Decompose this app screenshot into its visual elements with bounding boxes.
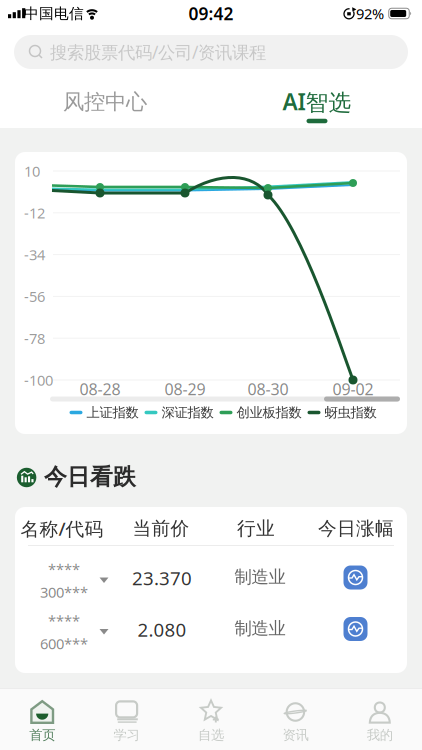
staticText: 制造业 bbox=[234, 618, 285, 639]
staticText: 09-02 bbox=[332, 378, 373, 400]
button[interactable]: 展开 300*** bbox=[15, 552, 119, 604]
button[interactable]: 首页 bbox=[0, 688, 84, 750]
button[interactable]: 风控中心 bbox=[30, 85, 180, 119]
staticText: -56 bbox=[24, 287, 45, 306]
staticText: 23.370 bbox=[132, 566, 192, 590]
staticText: 我的 bbox=[367, 727, 393, 743]
staticText: 今日看跌 bbox=[44, 463, 136, 491]
staticText: 09:42 bbox=[188, 2, 233, 25]
button[interactable]: 查看走势 bbox=[343, 565, 367, 589]
button[interactable]: 查看走势 bbox=[343, 617, 367, 641]
staticText: 92% bbox=[356, 4, 384, 23]
staticText: AI智选 bbox=[282, 86, 351, 117]
staticText: 自选 bbox=[198, 727, 224, 743]
staticText: 今日涨幅 bbox=[318, 517, 394, 540]
staticText: 资讯 bbox=[282, 727, 308, 743]
staticText: 制造业 bbox=[234, 566, 285, 588]
staticText: 名称/代码 bbox=[20, 516, 103, 541]
staticText: 上证指数 bbox=[86, 404, 138, 421]
staticText: -12 bbox=[24, 203, 45, 223]
button[interactable]: 搜索股票代码/公司/资讯课程 bbox=[14, 35, 408, 69]
staticText: 10 bbox=[24, 161, 40, 181]
staticText: **** bbox=[48, 611, 80, 630]
staticText: 学习 bbox=[114, 727, 140, 743]
staticText: 蚜虫指数 bbox=[324, 404, 376, 421]
button[interactable]: 资讯 bbox=[253, 688, 338, 750]
staticText: 当前价 bbox=[132, 517, 189, 540]
staticText: -100 bbox=[24, 370, 53, 390]
staticText: 搜索股票代码/公司/资讯课程 bbox=[50, 40, 266, 63]
staticText: 2.080 bbox=[137, 617, 186, 642]
staticText: 08-28 bbox=[79, 378, 120, 400]
staticText: 600*** bbox=[40, 634, 88, 653]
staticText: 08-29 bbox=[164, 378, 205, 400]
staticText: 深证指数 bbox=[161, 404, 213, 421]
staticText: 300*** bbox=[40, 582, 88, 602]
staticText: 风控中心 bbox=[63, 89, 147, 115]
staticText: 首页 bbox=[29, 727, 55, 743]
button[interactable]: 自选 bbox=[169, 688, 253, 750]
button[interactable]: AI智选 bbox=[242, 84, 392, 118]
button[interactable]: 展开 600*** bbox=[15, 603, 119, 655]
staticText: 08-30 bbox=[247, 378, 288, 400]
staticText: 创业板指数 bbox=[236, 404, 301, 421]
staticText: 行业 bbox=[237, 517, 275, 540]
staticText: 中国电信 bbox=[24, 4, 84, 22]
staticText: **** bbox=[48, 559, 80, 579]
staticText: -78 bbox=[24, 328, 45, 348]
button[interactable]: 学习 bbox=[84, 688, 169, 750]
button[interactable]: 我的 bbox=[338, 688, 422, 750]
staticText: -34 bbox=[24, 245, 45, 264]
